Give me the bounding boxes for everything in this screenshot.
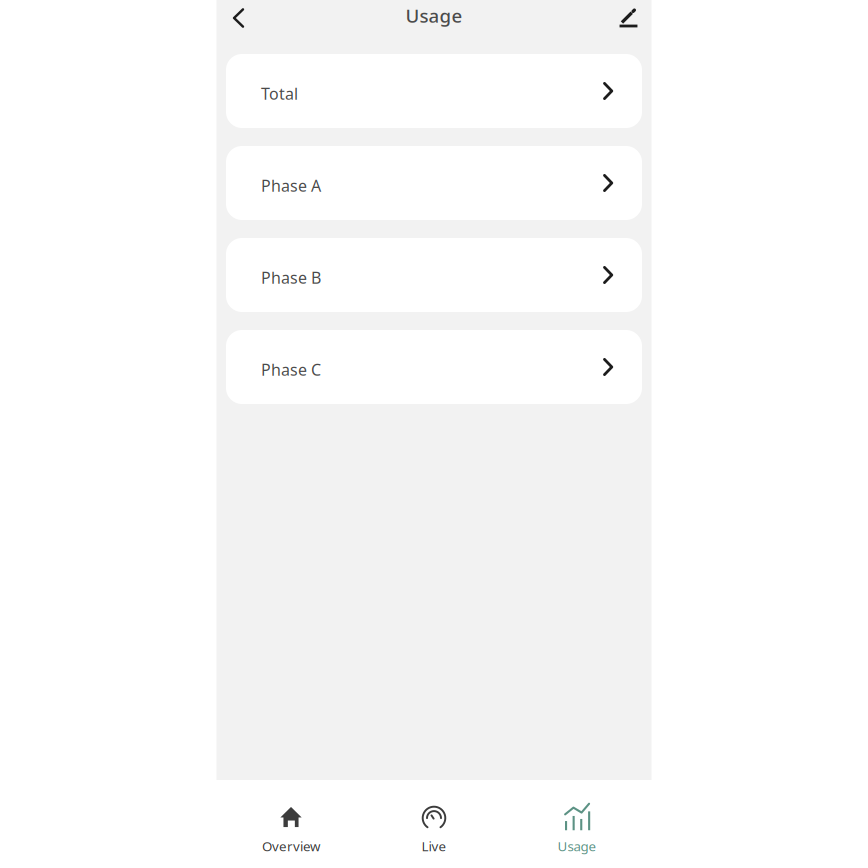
button[interactable]: Phase B — [226, 238, 642, 312]
button[interactable]: Phase A — [226, 146, 642, 220]
button[interactable]: Total — [226, 54, 642, 128]
staticText: Live — [421, 837, 446, 855]
staticText: Usage — [405, 3, 462, 28]
staticText: Phase A — [261, 175, 321, 196]
button[interactable]: Live — [362, 780, 505, 868]
staticText: Overview — [262, 837, 320, 855]
button[interactable]: Back — [219, 0, 257, 36]
button[interactable]: Edit — [609, 0, 647, 36]
button[interactable]: Phase C — [226, 330, 642, 404]
button[interactable]: Usage — [505, 780, 648, 868]
staticText: Phase C — [261, 359, 321, 380]
staticText: Phase B — [261, 267, 321, 288]
button[interactable]: Overview — [219, 780, 362, 868]
staticText: Total — [261, 83, 298, 104]
staticText: Usage — [557, 837, 596, 855]
